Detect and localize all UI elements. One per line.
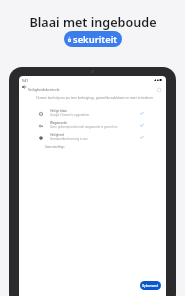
staticText: Bykomend	[142, 284, 159, 288]
button[interactable]: Back	[20, 83, 27, 90]
staticText: Veiligheidskontrole	[28, 87, 60, 92]
staticText: Google Chrome is opgedateer	[50, 113, 90, 117]
button[interactable]: sekuriteit	[64, 31, 122, 47]
staticText: Geen gekompromitteerde wagwoorde is gevi…	[50, 125, 118, 129]
button[interactable]: Wagwoorde	[19, 119, 166, 131]
staticText: sekuriteit	[73, 33, 118, 46]
staticText: Standaardbeskerming is aan	[50, 137, 88, 141]
button[interactable]: Gaan instellings	[45, 145, 65, 149]
button[interactable]: Bykomend	[140, 281, 161, 290]
button[interactable]: Help	[155, 86, 162, 93]
staticText: Wagwoorde	[50, 121, 67, 125]
staticText: Veilige blaai	[50, 109, 67, 113]
staticText: 9:41	[22, 79, 28, 83]
staticText: Chrome kan help om jou teen bedreigings,…	[36, 96, 154, 100]
button[interactable]: Veilige blaai	[19, 107, 166, 119]
staticText: Blaai met ingeboude	[29, 14, 157, 31]
staticText: Veiligheid	[50, 133, 64, 137]
button[interactable]: Veiligheid	[19, 131, 166, 143]
